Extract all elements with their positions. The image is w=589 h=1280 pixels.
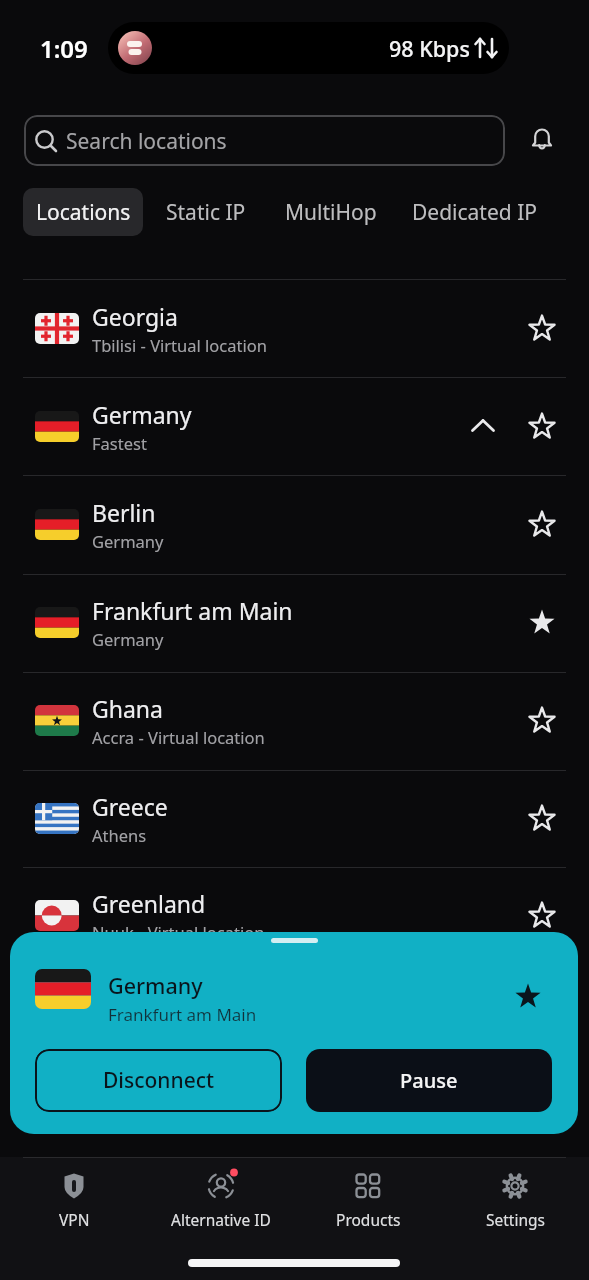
button[interactable] bbox=[526, 606, 558, 638]
button[interactable] bbox=[148, 1160, 294, 1250]
staticText: Alternative ID bbox=[171, 1209, 271, 1230]
staticText: Tbilisi - Virtual location bbox=[92, 334, 267, 356]
staticText: VPN bbox=[59, 1209, 90, 1230]
button[interactable] bbox=[526, 312, 558, 344]
button[interactable] bbox=[0, 574, 589, 671]
staticText: Accra - Virtual location bbox=[92, 726, 265, 748]
staticText: Germany bbox=[92, 530, 164, 552]
staticText: Search locations bbox=[66, 127, 227, 156]
button[interactable] bbox=[156, 188, 256, 236]
button[interactable] bbox=[304, 1160, 432, 1250]
button[interactable] bbox=[404, 188, 544, 236]
staticText: MultiHop bbox=[285, 198, 377, 227]
button[interactable] bbox=[280, 188, 381, 236]
button[interactable] bbox=[0, 770, 589, 867]
button[interactable] bbox=[527, 125, 557, 155]
staticText: Georgia bbox=[92, 301, 178, 332]
staticText: Static IP bbox=[166, 198, 246, 227]
button[interactable] bbox=[0, 476, 589, 573]
button[interactable] bbox=[526, 899, 558, 931]
button[interactable]: Pause bbox=[306, 1049, 552, 1112]
button[interactable] bbox=[24, 115, 505, 166]
button[interactable] bbox=[526, 802, 558, 834]
button[interactable] bbox=[0, 672, 589, 769]
staticText: Settings bbox=[486, 1209, 545, 1230]
button[interactable] bbox=[467, 410, 499, 442]
button[interactable]: Disconnect bbox=[35, 1049, 282, 1112]
staticText: Germany bbox=[108, 971, 203, 1000]
staticText: Products bbox=[336, 1209, 401, 1230]
staticText: Germany bbox=[92, 628, 164, 650]
staticText: Dedicated IP bbox=[412, 198, 537, 227]
staticText: Frankfurt am Main bbox=[108, 1003, 257, 1026]
staticText: Nuuk - Virtual location bbox=[92, 921, 265, 943]
button[interactable] bbox=[0, 280, 589, 377]
staticText: Ghana bbox=[92, 693, 163, 724]
staticText: Berlin bbox=[92, 497, 156, 528]
staticText: 1:09 bbox=[40, 32, 88, 65]
staticText: Greece bbox=[92, 791, 168, 822]
button[interactable] bbox=[0, 378, 589, 475]
button[interactable] bbox=[512, 980, 544, 1012]
staticText: Athens bbox=[92, 824, 147, 846]
staticText: 98 Kbps bbox=[389, 34, 470, 63]
staticText: Locations bbox=[36, 198, 131, 227]
button[interactable] bbox=[526, 508, 558, 540]
staticText: Germany bbox=[92, 399, 192, 430]
staticText: Greenland bbox=[92, 888, 206, 919]
button[interactable] bbox=[526, 410, 558, 442]
staticText: Disconnect bbox=[103, 1066, 215, 1095]
button[interactable] bbox=[23, 188, 143, 236]
staticText: Pause bbox=[400, 1067, 458, 1094]
button[interactable] bbox=[526, 704, 558, 736]
staticText: Fastest bbox=[92, 432, 147, 454]
staticText: Frankfurt am Main bbox=[92, 595, 293, 626]
button[interactable] bbox=[0, 867, 589, 964]
button[interactable] bbox=[452, 1160, 578, 1250]
button[interactable] bbox=[10, 1160, 138, 1250]
